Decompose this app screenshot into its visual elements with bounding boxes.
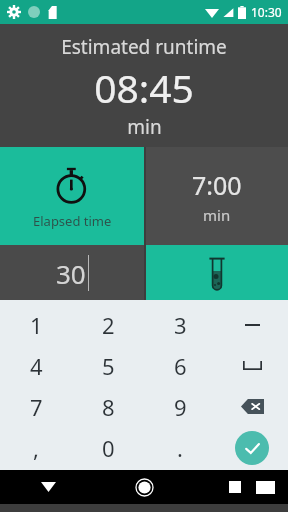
button[interactable]: 9	[144, 386, 216, 427]
staticText: 7	[30, 392, 43, 422]
button[interactable]: Minus	[216, 304, 288, 345]
button[interactable]: Space	[216, 345, 288, 386]
button[interactable]: .	[144, 427, 216, 468]
staticText: min	[203, 205, 231, 225]
staticText: 10:30	[251, 4, 282, 20]
staticText: 30	[56, 256, 86, 291]
staticText: Estimated runtime	[61, 34, 227, 60]
button[interactable]: Home	[96, 470, 192, 504]
button[interactable]: 30	[0, 245, 144, 300]
staticText: 1	[30, 310, 43, 340]
button[interactable]: 7	[0, 386, 72, 427]
button[interactable]: ,	[0, 427, 72, 468]
button[interactable]: 1	[0, 304, 72, 345]
staticText: 8	[102, 392, 115, 422]
button[interactable]: 0	[72, 427, 144, 468]
staticText: 4	[30, 351, 43, 381]
button[interactable]: 4	[0, 345, 72, 386]
button[interactable]: 3	[144, 304, 216, 345]
staticText: 6	[174, 351, 187, 381]
staticText: 5	[102, 351, 115, 381]
button[interactable]: 8	[72, 386, 144, 427]
button[interactable]: 5	[72, 345, 144, 386]
staticText: 7:00	[192, 168, 242, 202]
button[interactable]: Back	[0, 470, 96, 504]
staticText: 08:45	[94, 61, 194, 114]
button[interactable]: Measure sample	[146, 245, 288, 300]
button[interactable]: Elapsed time	[0, 147, 144, 245]
staticText: Elapsed time	[33, 212, 112, 230]
staticText: .	[177, 433, 183, 463]
button[interactable]: 2	[72, 304, 144, 345]
staticText: 0	[102, 433, 115, 463]
button[interactable]: Backspace	[216, 386, 288, 427]
button[interactable]: 6	[144, 345, 216, 386]
staticText: ,	[33, 433, 39, 463]
button[interactable]: 7:00	[146, 147, 288, 245]
staticText: 3	[174, 310, 187, 340]
button[interactable]: Recents	[220, 472, 250, 502]
button[interactable]: Confirm	[216, 427, 288, 468]
button[interactable]: Keyboard	[250, 472, 280, 502]
staticText: min	[127, 114, 162, 140]
staticText: 9	[174, 392, 187, 422]
staticText: 2	[102, 310, 115, 340]
